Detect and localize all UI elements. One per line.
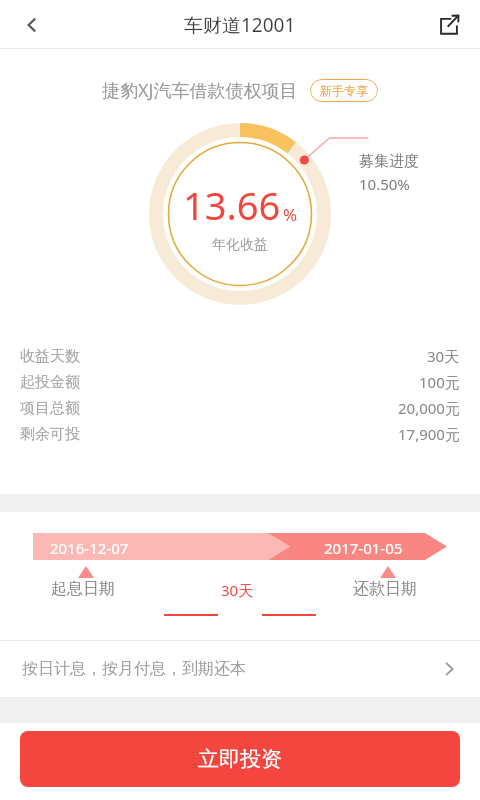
staticText: 项目总额	[20, 399, 80, 418]
staticText: 13.66	[183, 179, 281, 231]
staticText: 募集进度	[359, 152, 419, 171]
staticText: 30天	[221, 580, 254, 600]
staticText: 新手专享	[320, 83, 368, 98]
button[interactable]: 按日计息，按月付息，到期还本	[0, 640, 480, 697]
button[interactable]: 立即投资	[20, 731, 460, 787]
staticText: 30天	[427, 346, 460, 366]
staticText: 年化收益	[212, 236, 268, 254]
staticText: 起息日期	[51, 579, 115, 599]
staticText: 2016-12-07	[50, 538, 129, 558]
staticText: 剩余可投	[20, 425, 80, 444]
button[interactable]: Share	[426, 2, 472, 48]
staticText: 还款日期	[353, 579, 417, 599]
staticText: 立即投资	[198, 746, 282, 772]
staticText: 10.50%	[359, 174, 410, 194]
staticText: 按日计息，按月付息，到期还本	[22, 659, 246, 679]
staticText: 捷豹XJ汽车借款债权项目	[102, 78, 298, 103]
staticText: 起投金额	[20, 373, 80, 392]
staticText: 17,900元	[398, 424, 460, 444]
staticText: 2017-01-05	[324, 538, 403, 558]
staticText: 车财道12001	[184, 12, 296, 38]
staticText: %	[283, 203, 298, 226]
staticText: 收益天数	[20, 347, 80, 366]
button[interactable]: Back	[8, 1, 56, 49]
staticText: 100元	[419, 372, 460, 392]
staticText: 20,000元	[398, 398, 460, 418]
